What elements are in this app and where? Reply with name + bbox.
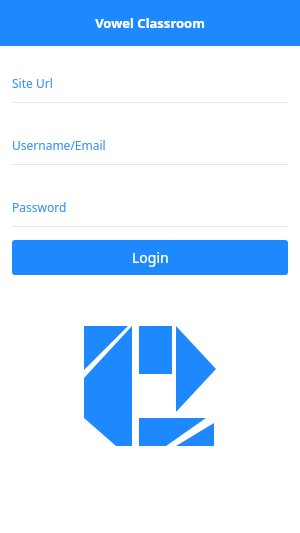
staticText: Username/Email: [12, 137, 106, 153]
other: Vowel Classroom logo: [84, 326, 216, 446]
staticText: Site Url: [12, 75, 53, 91]
button[interactable]: Password: [0, 199, 300, 227]
button[interactable]: Username/Email: [0, 137, 300, 165]
staticText: Vowel Classroom: [95, 14, 205, 32]
staticText: Login: [132, 248, 169, 267]
button[interactable]: Site Url: [0, 75, 300, 103]
staticText: Password: [12, 199, 67, 215]
button[interactable]: Login: [12, 240, 288, 275]
